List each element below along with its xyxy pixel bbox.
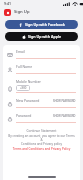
staticText: Email [16,49,25,54]
button[interactable]: Full Name [7,64,76,74]
button[interactable]: Sign Up with Apple [5,32,78,41]
button[interactable]: Mobile Number [7,79,76,93]
staticText: Full Name [16,64,33,69]
staticText: Sign Up with Facebook [25,22,65,27]
staticText: 9:41 [4,1,11,6]
staticText: By creating an account, you agree to our… [7,134,76,146]
button[interactable]: Sign Up with Facebook [5,20,78,29]
staticText: Sign Up with Apple [28,34,62,39]
button[interactable]: SHOW PASSWORD [53,114,76,118]
staticText: New Password [16,98,40,103]
other: App logo [4,9,11,16]
button[interactable]: Password [7,113,76,123]
staticText: +880 [20,86,27,90]
staticText: Continue Statement [7,129,76,133]
button[interactable]: SHOW PASSWORD [53,99,76,103]
staticText: Mobile Number [16,79,41,84]
staticText: Password [16,113,32,118]
button[interactable]: +880 [16,85,30,91]
button[interactable]: Terms and Conditions and Privacy Policy [7,147,76,151]
button[interactable]: Email [7,49,76,59]
button[interactable]: New Password [7,98,76,108]
staticText: Sign Up [14,9,30,15]
